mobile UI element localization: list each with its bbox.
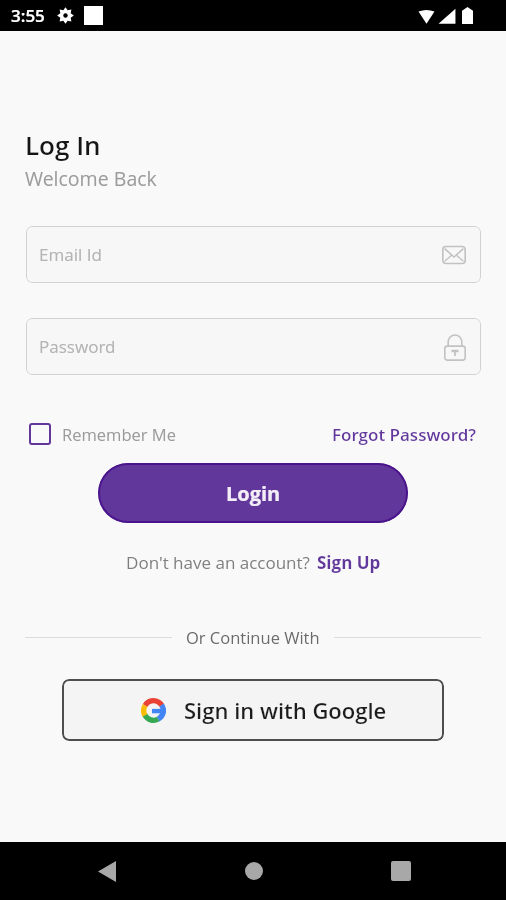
staticText: Sign in with Google xyxy=(184,695,387,725)
staticText: Or Continue With xyxy=(186,626,320,648)
staticText: Remember Me xyxy=(62,423,176,445)
button[interactable]: Login xyxy=(98,463,408,523)
button[interactable]: Back xyxy=(33,842,180,900)
button[interactable]: Forgot Password? xyxy=(332,423,476,446)
staticText: Email Id xyxy=(39,243,102,266)
button[interactable]: Sign in with Google xyxy=(62,679,444,741)
staticText: 3:55 xyxy=(11,4,45,27)
other: Email xyxy=(442,243,466,267)
button[interactable]: Email Id xyxy=(26,226,481,283)
staticText: Forgot Password? xyxy=(332,423,476,446)
button[interactable]: Remember Me xyxy=(29,423,176,445)
staticText: Password xyxy=(39,335,116,358)
staticText: Don't have an account? xyxy=(126,551,310,574)
staticText: Welcome Back xyxy=(25,165,157,192)
button[interactable]: Home xyxy=(180,842,327,900)
staticText: Sign Up xyxy=(317,551,381,574)
staticText: Log In xyxy=(25,127,101,162)
button[interactable]: Sign Up xyxy=(317,551,381,574)
other: Password xyxy=(444,333,466,361)
button[interactable]: Password xyxy=(26,318,481,375)
button[interactable]: Recent apps xyxy=(327,842,474,900)
staticText: Login xyxy=(226,480,281,507)
